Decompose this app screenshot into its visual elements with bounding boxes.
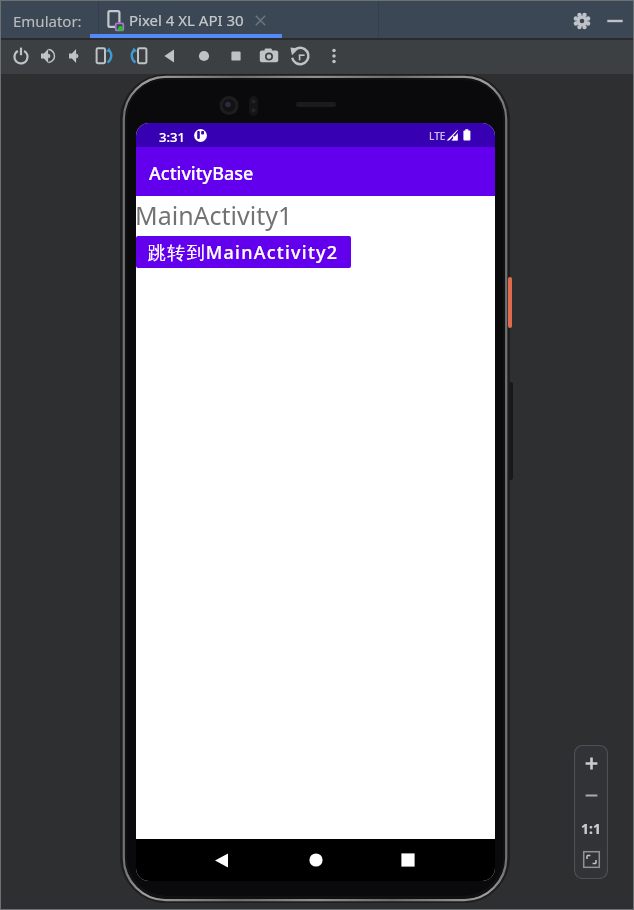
button[interactable]: Zoom out: [574, 781, 608, 810]
button[interactable]: Back: [156, 41, 186, 71]
staticText: Emulator:: [13, 11, 82, 31]
button[interactable]: Close tab: [251, 11, 269, 29]
staticText: Pixel 4 XL API 30: [129, 10, 244, 30]
button[interactable]: Rotate left: [90, 41, 120, 71]
button[interactable]: Home: [280, 839, 352, 881]
button[interactable]: Pixel 4 XL API 30: [99, 1, 378, 38]
button[interactable]: Extended controls: [285, 41, 315, 71]
button[interactable]: Rotate right: [123, 41, 153, 71]
staticText: LTE: [429, 129, 446, 143]
button[interactable]: More: [319, 41, 349, 71]
staticText: 3:31: [159, 128, 185, 146]
button[interactable]: Volume down: [61, 41, 91, 71]
button[interactable]: Recent apps: [372, 839, 444, 881]
button[interactable]: Actual size: [574, 814, 608, 842]
button[interactable]: Overview: [221, 41, 251, 71]
button[interactable]: Home: [189, 41, 219, 71]
button[interactable]: Volume up: [33, 41, 63, 71]
button[interactable]: Back: [185, 839, 257, 881]
button[interactable]: 跳转到MainActivity2: [136, 236, 351, 268]
button[interactable]: Minimize: [602, 8, 628, 34]
button[interactable]: Fit to screen: [574, 845, 608, 873]
button[interactable]: Screenshot: [254, 41, 284, 71]
staticText: MainActivity1: [136, 198, 293, 232]
staticText: 1:1: [581, 819, 601, 838]
button[interactable]: Power: [6, 41, 36, 71]
button[interactable]: Zoom in: [574, 749, 608, 778]
staticText: ActivityBase: [149, 161, 254, 186]
button[interactable]: Settings: [569, 8, 595, 34]
staticText: 跳转到MainActivity2: [148, 240, 339, 265]
